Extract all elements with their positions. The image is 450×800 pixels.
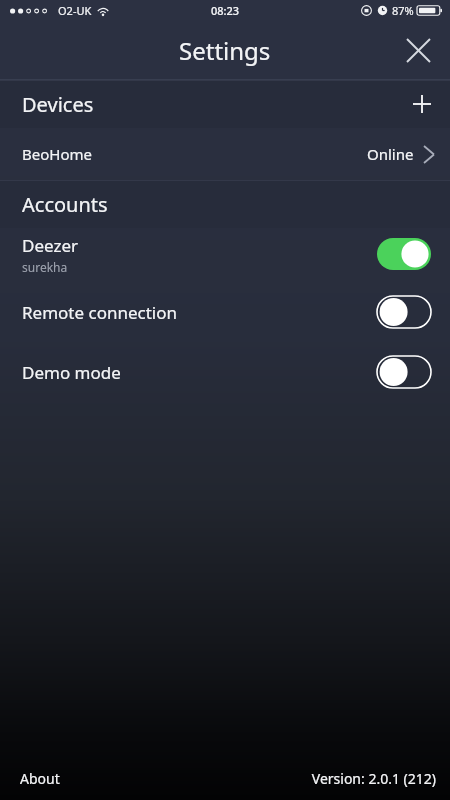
button[interactable]: Close — [396, 28, 440, 72]
button[interactable]: Remote connection off — [376, 295, 432, 329]
staticText: Deezer — [22, 234, 79, 257]
staticText: About — [20, 769, 60, 788]
staticText: Demo mode — [22, 361, 121, 384]
staticText: Version: 2.0.1 (212) — [311, 769, 436, 788]
staticText: Remote connection — [22, 301, 178, 324]
staticText: Settings — [179, 34, 271, 67]
button[interactable]: Add device — [402, 84, 442, 124]
button[interactable]: Deezer — [0, 228, 450, 280]
button[interactable]: BeoHome — [0, 128, 450, 180]
staticText: surekha — [22, 259, 68, 275]
button[interactable]: Demo mode — [0, 346, 450, 398]
staticText: Online — [367, 144, 414, 164]
staticText: O2-UK — [58, 3, 92, 18]
button[interactable]: Remote connection — [0, 286, 450, 338]
staticText: Accounts — [22, 191, 108, 218]
staticText: 87% — [392, 3, 414, 18]
staticText: BeoHome — [22, 144, 92, 164]
button[interactable]: Deezer on — [376, 237, 432, 271]
staticText: 08:23 — [211, 3, 240, 18]
button[interactable]: Demo mode off — [376, 355, 432, 389]
button[interactable]: About — [14, 763, 66, 794]
staticText: Devices — [22, 91, 94, 118]
